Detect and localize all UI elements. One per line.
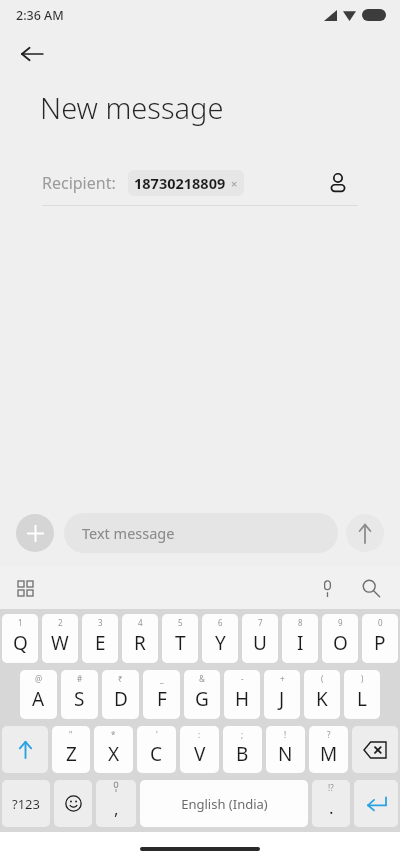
staticText: )	[361, 673, 364, 684]
button[interactable]: 4	[122, 614, 158, 663]
button[interactable]: Enter	[354, 780, 398, 827]
button[interactable]: Shift	[2, 726, 48, 773]
button[interactable]: Search	[354, 571, 388, 605]
button[interactable]: 18730218809	[128, 170, 244, 196]
staticText: H	[235, 686, 250, 712]
staticText: _	[160, 673, 164, 684]
staticText: Text message	[82, 523, 175, 543]
staticText: New message	[40, 88, 224, 127]
button[interactable]: 1	[2, 614, 38, 663]
staticText: "	[69, 729, 73, 740]
staticText: 0	[378, 617, 383, 628]
staticText: Y	[215, 630, 226, 656]
staticText: C	[150, 741, 163, 767]
staticText: W	[51, 630, 69, 656]
button[interactable]: Send	[346, 514, 384, 552]
staticText: 5	[178, 617, 183, 628]
button[interactable]: '	[137, 726, 176, 773]
button[interactable]: ,	[96, 780, 136, 827]
button[interactable]: Emoji	[54, 780, 92, 827]
staticText: 6	[218, 617, 223, 628]
staticText: *	[111, 729, 116, 740]
staticText: '	[156, 729, 158, 740]
button[interactable]: &	[184, 670, 220, 719]
staticText: ;	[241, 729, 244, 740]
button[interactable]: :	[180, 726, 219, 773]
button[interactable]: Add contact	[318, 163, 358, 203]
staticText: L	[357, 686, 367, 712]
button[interactable]: ;	[223, 726, 262, 773]
button[interactable]: !?	[312, 780, 350, 827]
staticText: X	[108, 741, 120, 767]
staticText: !?	[328, 782, 334, 793]
button[interactable]: Text message	[64, 513, 338, 553]
button[interactable]: (	[304, 670, 340, 719]
staticText: 3	[98, 617, 103, 628]
staticText: A	[32, 686, 45, 712]
staticText: T	[175, 630, 186, 656]
button[interactable]: Back	[8, 30, 56, 78]
staticText: 2	[58, 617, 63, 628]
staticText: ?	[327, 729, 331, 740]
button[interactable]: 9	[322, 614, 358, 663]
button[interactable]: *	[94, 726, 133, 773]
staticText: 2:36 AM	[16, 7, 64, 24]
staticText: E	[95, 630, 106, 656]
staticText: English (India)	[181, 795, 268, 813]
staticText: U	[253, 630, 267, 656]
button[interactable]: 2	[42, 614, 78, 663]
staticText: 7	[258, 617, 263, 628]
staticText: +	[280, 673, 285, 684]
button[interactable]: Voice input	[310, 571, 344, 605]
button[interactable]: 6	[202, 614, 238, 663]
staticText: @	[35, 673, 43, 684]
button[interactable]: 7	[242, 614, 278, 663]
staticText: -	[241, 673, 244, 684]
button[interactable]: Backspace	[352, 726, 398, 773]
staticText: ×	[231, 176, 238, 191]
button[interactable]: ?123	[2, 780, 50, 827]
staticText: !	[284, 729, 287, 740]
staticText: B	[236, 741, 249, 767]
button[interactable]: +	[264, 670, 300, 719]
button[interactable]: #	[61, 670, 98, 719]
staticText: O	[333, 630, 348, 656]
staticText: 18730218809	[134, 173, 226, 193]
button[interactable]: ?	[309, 726, 348, 773]
staticText: J	[279, 686, 285, 712]
button[interactable]: Keyboard menu	[8, 571, 42, 605]
staticText: 1	[18, 617, 23, 628]
staticText: N	[278, 741, 293, 767]
staticText: D	[114, 686, 128, 712]
button[interactable]: )	[344, 670, 380, 719]
button[interactable]: 8	[282, 614, 318, 663]
button[interactable]: !	[266, 726, 305, 773]
button[interactable]: _	[143, 670, 180, 719]
button[interactable]: ₹	[102, 670, 139, 719]
staticText: K	[316, 686, 328, 712]
button[interactable]: "	[52, 726, 90, 773]
staticText: ₹	[118, 673, 123, 684]
staticText: Recipient:	[42, 172, 116, 194]
staticText: Z	[66, 741, 77, 767]
button[interactable]: 5	[162, 614, 198, 663]
button[interactable]: -	[224, 670, 260, 719]
staticText: M	[320, 741, 338, 767]
staticText: ?123	[12, 795, 40, 813]
button[interactable]: English (India)	[140, 780, 308, 827]
staticText: 4	[138, 617, 143, 628]
staticText: .	[329, 796, 334, 819]
staticText: R	[134, 630, 146, 656]
staticText: I	[297, 630, 304, 656]
staticText: 8	[298, 617, 303, 628]
staticText: #	[77, 673, 83, 684]
staticText: (	[321, 673, 324, 684]
staticText: G	[195, 686, 209, 712]
button[interactable]: Attach	[16, 514, 54, 552]
staticText: F	[157, 686, 167, 712]
button[interactable]: 0	[362, 614, 398, 663]
staticText: V	[194, 741, 206, 767]
staticText: P	[374, 630, 386, 656]
button[interactable]: @	[20, 670, 57, 719]
button[interactable]: 3	[82, 614, 118, 663]
